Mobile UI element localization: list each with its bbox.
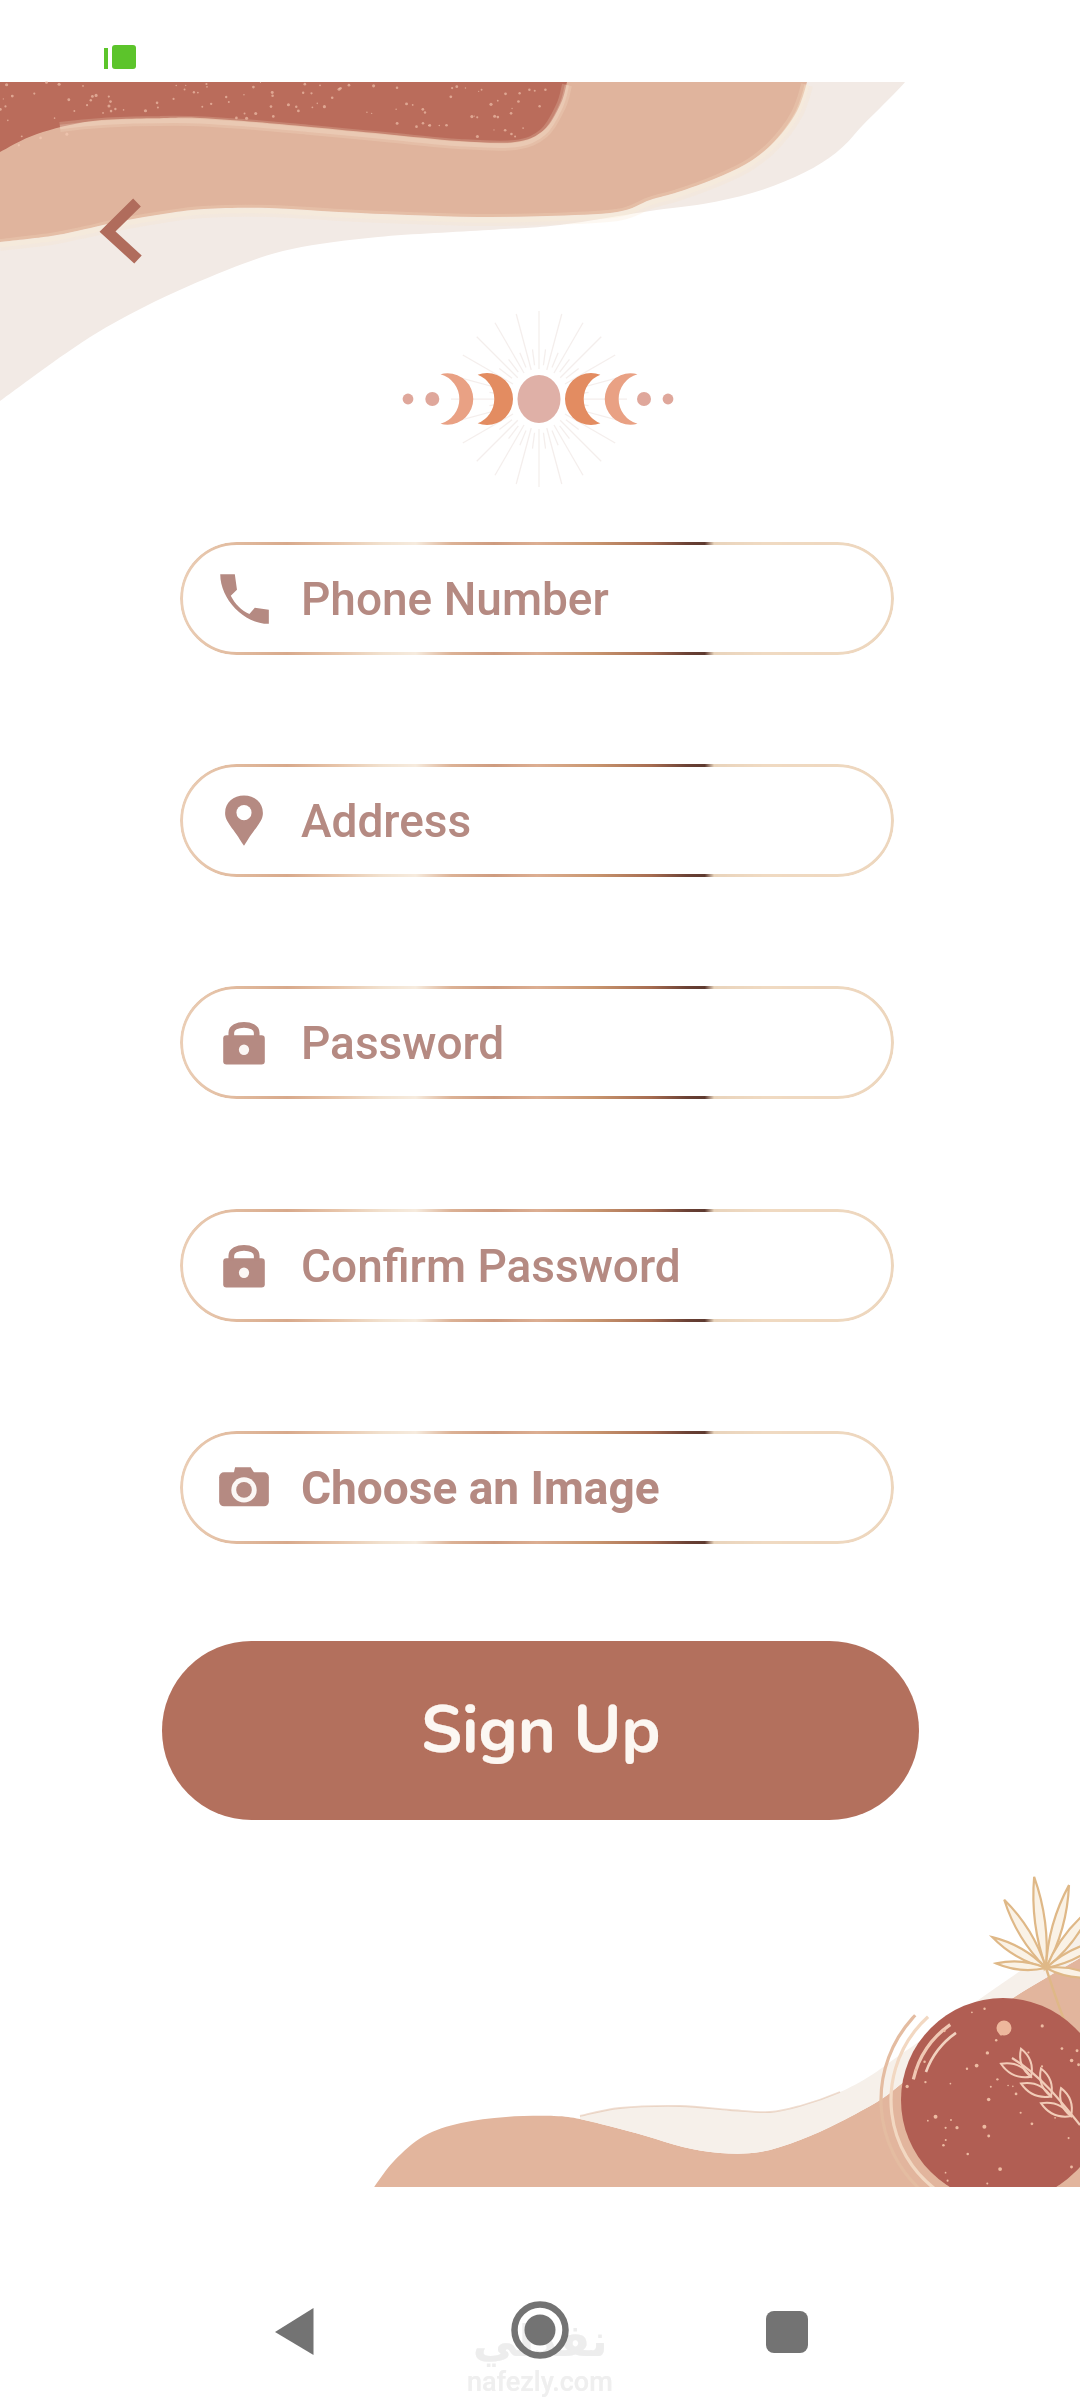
button[interactable]: Confirm Password [180, 1209, 894, 1322]
button[interactable]: Choose an Image [180, 1431, 894, 1544]
staticText: Choose an Image [301, 1461, 660, 1515]
staticText: nafezly.com [467, 2366, 613, 2398]
staticText: Password [301, 1016, 505, 1070]
staticText: Phone Number [301, 572, 609, 626]
staticText: Confirm Password [301, 1239, 681, 1293]
button[interactable]: Phone Number [180, 542, 894, 655]
button[interactable]: Password [180, 986, 894, 1099]
button[interactable]: Back [85, 186, 175, 286]
staticText: Sign Up [421, 1686, 661, 1775]
staticText: Address [301, 794, 472, 848]
button[interactable]: Address [180, 764, 894, 877]
staticText: نفذلي [473, 2315, 608, 2366]
button[interactable]: Sign Up [162, 1641, 919, 1820]
